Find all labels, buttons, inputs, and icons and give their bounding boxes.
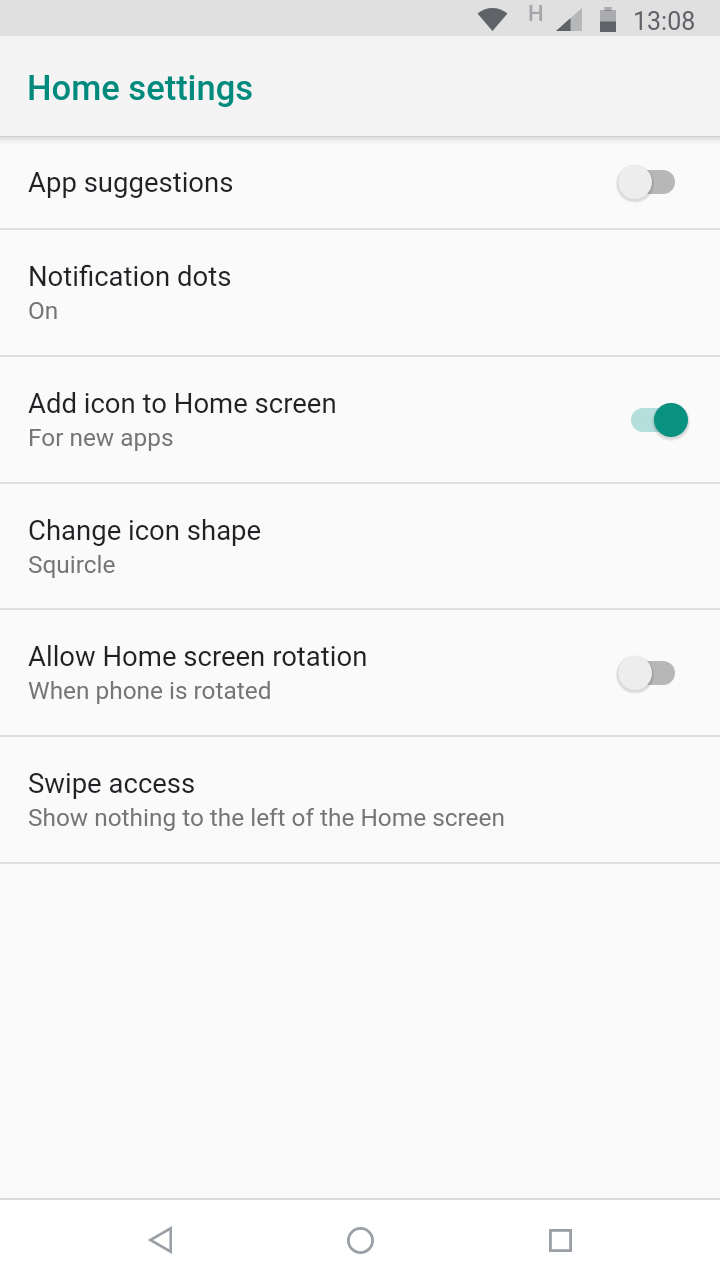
button[interactable]: Home <box>240 1200 480 1280</box>
staticText: On <box>28 296 59 325</box>
staticText: For new apps <box>28 423 174 452</box>
staticText: App suggestions <box>28 166 234 198</box>
button[interactable]: Switch, off <box>602 140 698 224</box>
button[interactable]: Recent apps <box>480 1200 640 1280</box>
staticText: Show nothing to the left of the Home scr… <box>28 803 505 832</box>
staticText: Swipe access <box>28 767 196 799</box>
staticText: 13:08 <box>633 7 696 36</box>
staticText: Change icon shape <box>28 514 262 546</box>
staticText: Allow Home screen rotation <box>28 640 368 672</box>
staticText: When phone is rotated <box>28 676 272 705</box>
button[interactable]: Swipe access <box>0 737 720 862</box>
staticText: Home settings <box>27 68 254 108</box>
staticText: Notification dots <box>28 260 232 292</box>
button[interactable]: Change icon shape <box>0 484 720 608</box>
button[interactable]: Switch, off <box>602 631 698 715</box>
button[interactable]: Add icon to Home screen <box>0 357 720 482</box>
staticText: Add icon to Home screen <box>28 387 337 419</box>
staticText: H <box>528 1 544 27</box>
button[interactable]: Switch, on <box>602 378 698 462</box>
button[interactable]: Notification dots <box>0 230 720 355</box>
staticText: Squircle <box>28 550 116 579</box>
button[interactable]: App suggestions <box>0 136 720 228</box>
button[interactable]: Allow Home screen rotation <box>0 610 720 735</box>
button[interactable]: Back <box>80 1200 240 1280</box>
